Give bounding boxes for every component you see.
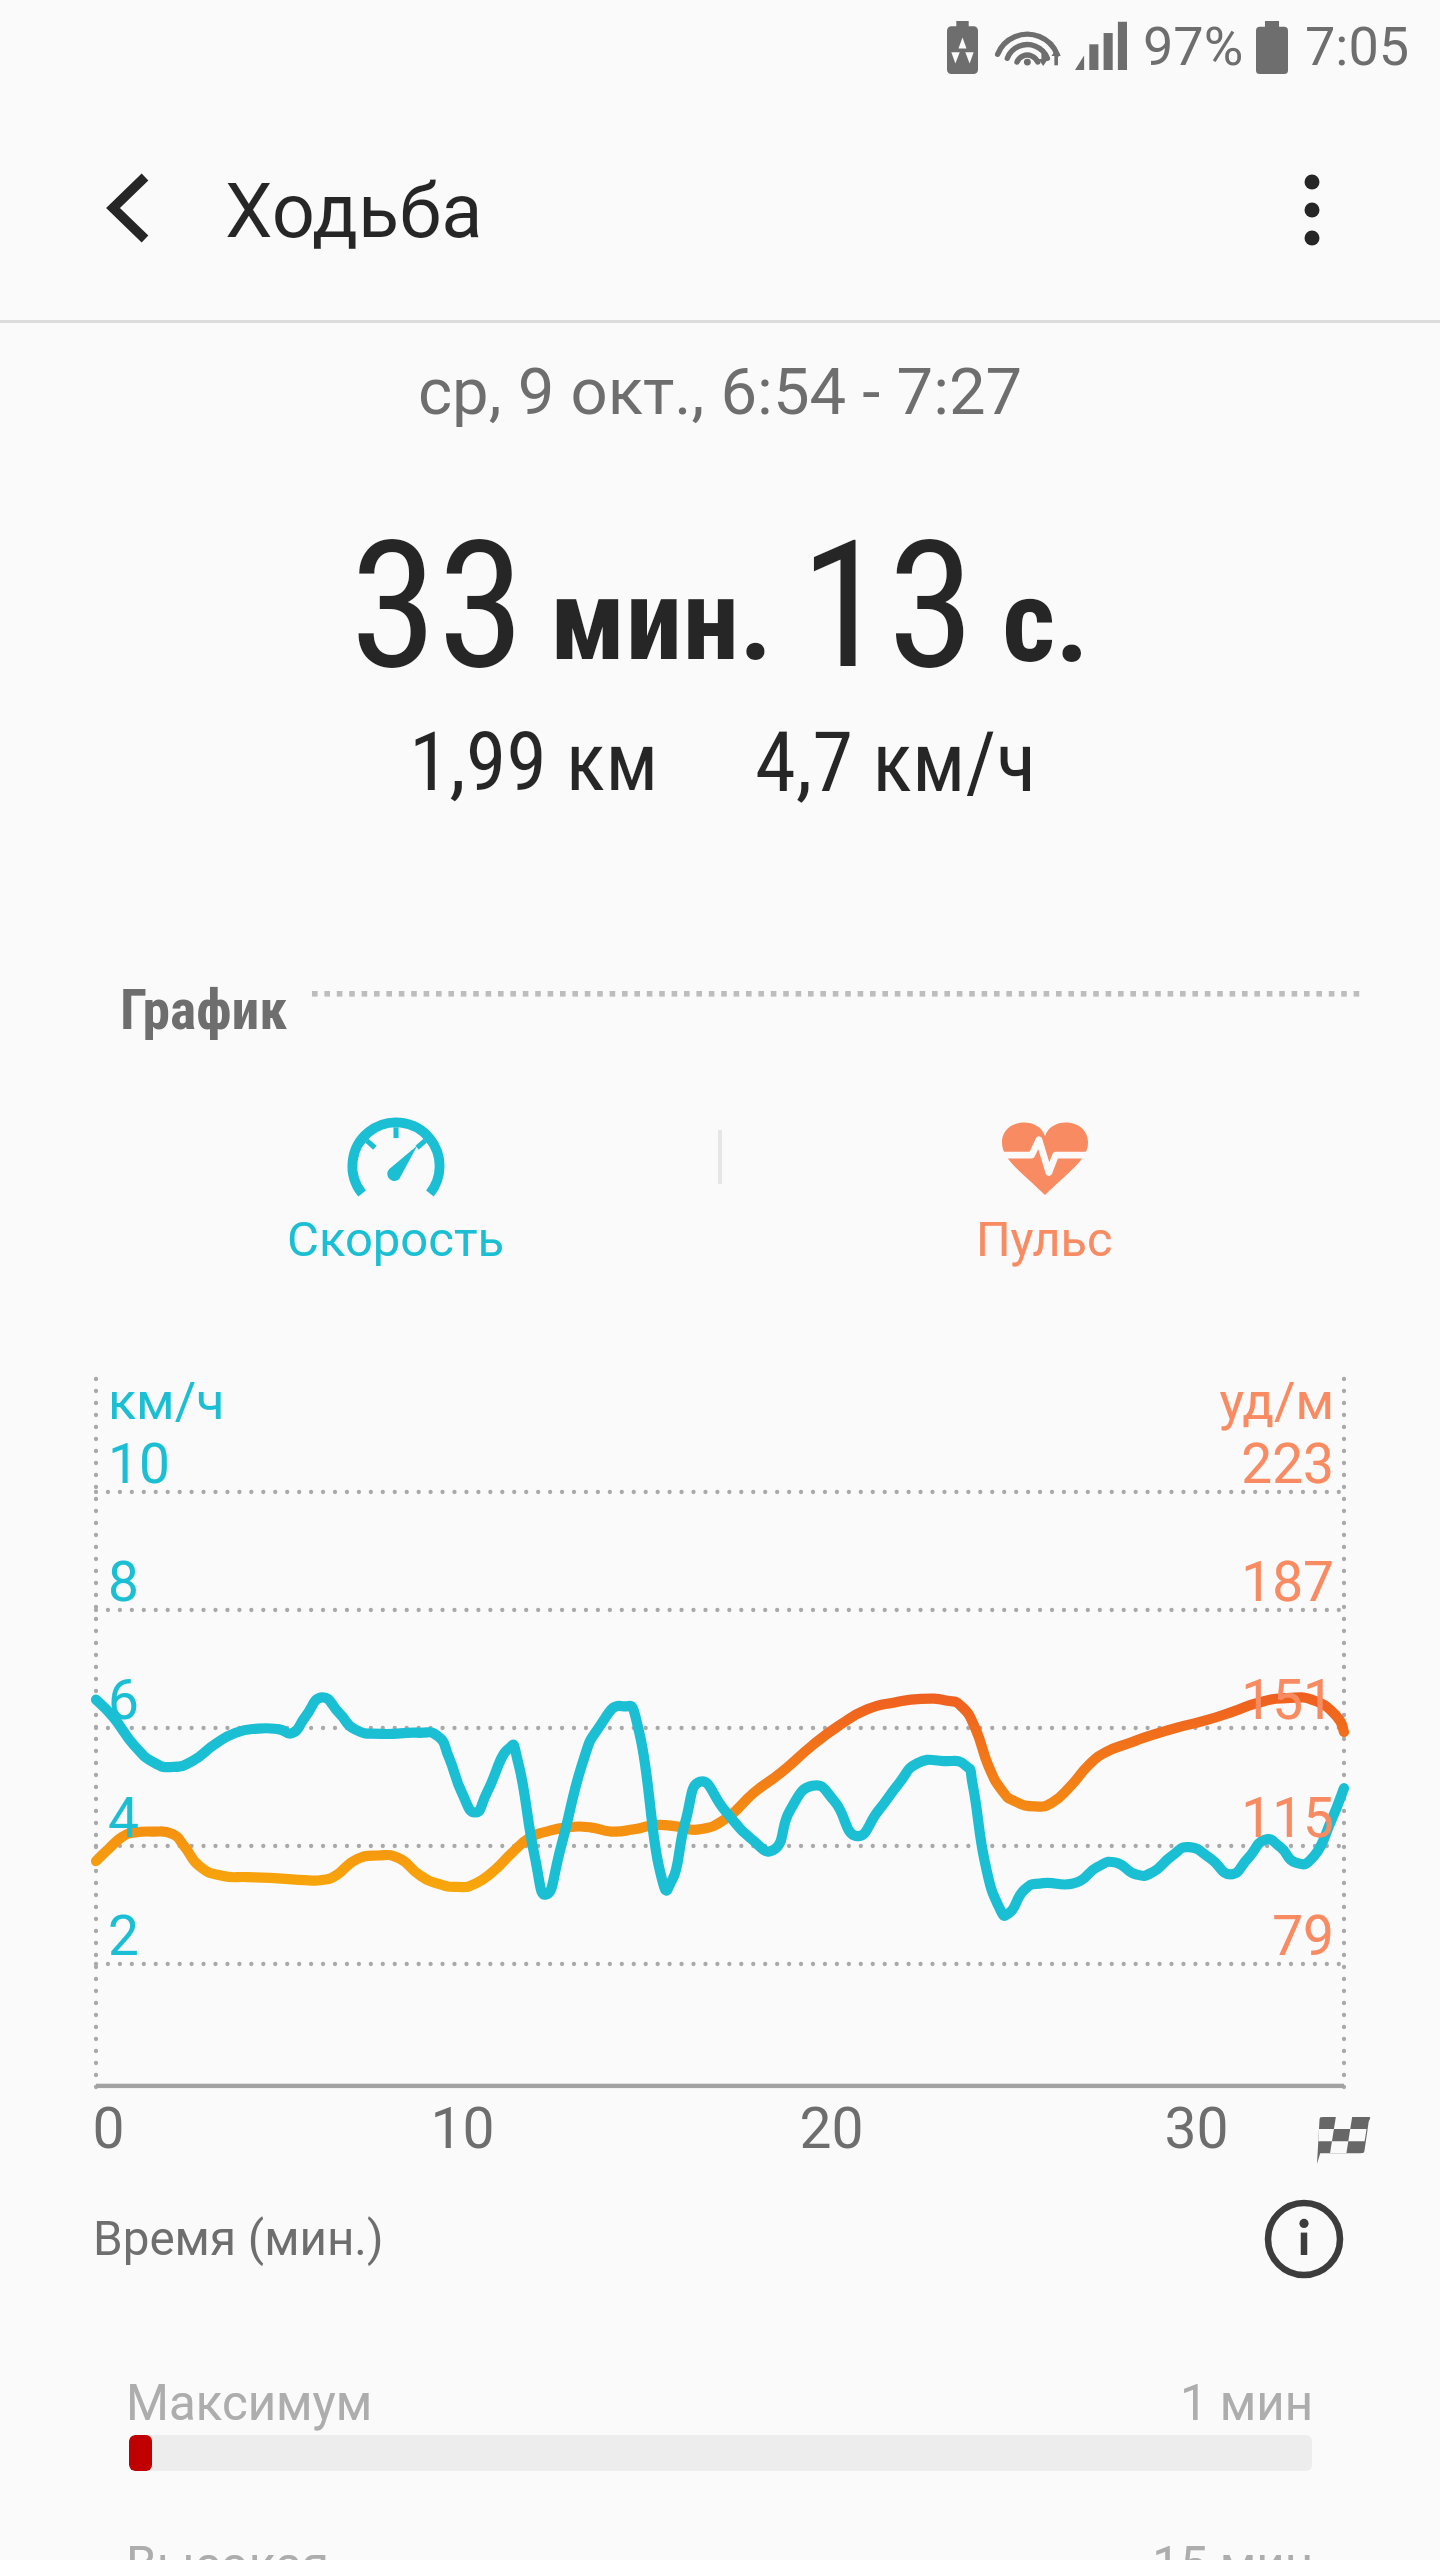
staticText: 33 (350, 502, 525, 709)
staticText: км/ч (108, 1371, 225, 1432)
staticText: 13 (800, 502, 975, 709)
staticText: Ходьба (225, 167, 483, 256)
staticText: 223 (1241, 1432, 1334, 1496)
staticText: 4 (108, 1786, 139, 1850)
staticText: уд/м (1219, 1371, 1334, 1432)
staticText: 79 (1272, 1904, 1334, 1968)
staticText: 187 (1241, 1550, 1334, 1614)
staticText: 1 мин (1179, 2374, 1313, 2432)
staticText: 30 (1164, 2095, 1229, 2162)
button[interactable]: Скорость (200, 1096, 590, 1292)
button[interactable]: More options (1260, 158, 1364, 262)
staticText: Максимум (126, 2374, 373, 2432)
staticText: График (120, 977, 288, 1042)
staticText: мин. (550, 553, 773, 686)
staticText: 115 (1241, 1786, 1334, 1850)
staticText: 2 (108, 1904, 139, 1968)
staticText: 4,7 км/ч (755, 714, 1037, 811)
staticText: 6 (108, 1668, 139, 1732)
staticText: 97% (1143, 15, 1244, 78)
staticText: 10 (430, 2095, 495, 2162)
button[interactable]: Максимум (96, 2360, 1344, 2490)
staticText: 1,99 км (409, 714, 659, 810)
button[interactable]: Высокая (96, 2522, 1344, 2560)
staticText: 10 (108, 1432, 170, 1496)
staticText: 15 мин (1152, 2536, 1313, 2560)
button[interactable]: Back (72, 158, 176, 262)
staticText: 0 (92, 2095, 125, 2162)
staticText: 8 (108, 1550, 139, 1614)
staticText: ср, 9 окт., 6:54 - 7:27 (418, 354, 1023, 430)
staticText: 151 (1241, 1668, 1334, 1732)
button[interactable]: Information (1256, 2191, 1352, 2287)
staticText: Пульс (976, 1211, 1113, 1268)
staticText: с. (1002, 553, 1090, 689)
staticText: Скорость (287, 1211, 505, 1268)
staticText: 20 (799, 2095, 864, 2162)
staticText: 7:05 (1305, 15, 1410, 78)
button[interactable]: Пульс (850, 1096, 1240, 1292)
staticText: Время (мин.) (93, 2211, 384, 2267)
staticText: Высокая (126, 2536, 329, 2560)
